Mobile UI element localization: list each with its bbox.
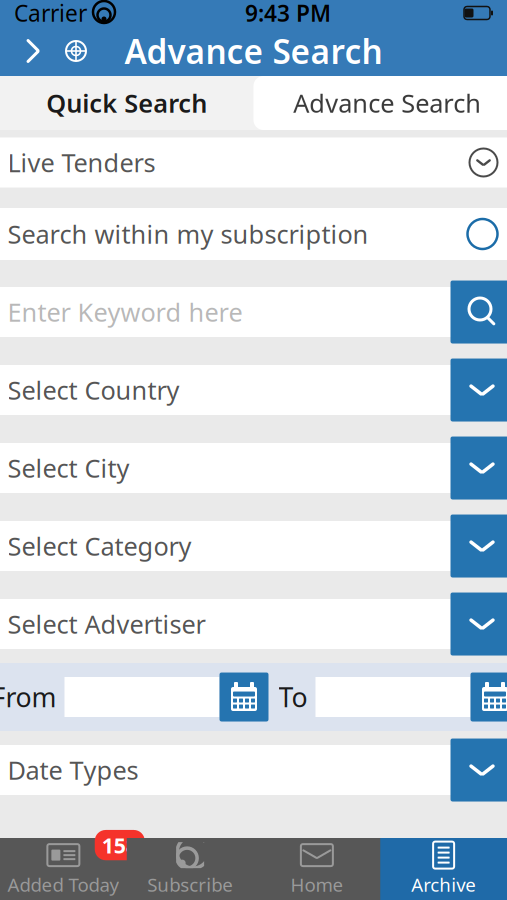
staticText: Date Types [7,753,138,787]
staticText: Select Country [7,373,179,407]
button[interactable]: 158 [0,838,127,900]
staticText: Select Advertiser [7,607,205,641]
staticText: Subscribe [147,872,233,897]
button[interactable]: Quick Search [0,76,253,130]
button[interactable]: Select City [450,436,507,499]
button[interactable]: From date [64,672,268,721]
staticText: Select City [7,451,129,485]
staticText: Enter Keyword here [7,295,242,329]
button[interactable]: Search within my subscription [461,213,503,255]
staticText: Archive [411,872,476,897]
button[interactable]: Select Advertiser [450,592,507,655]
staticText: 158 [102,831,138,859]
button[interactable]: Language [58,32,94,70]
staticText: Advance Search [293,86,481,120]
staticText: Select Category [7,529,191,563]
button[interactable]: Home [253,838,380,900]
staticText: Home [290,872,343,897]
button[interactable]: Select Country [450,358,507,421]
button[interactable]: Select Category [450,514,507,577]
staticText: From [0,679,56,715]
staticText: 9:43 PM [245,0,331,28]
button[interactable]: Advance Search [253,76,507,130]
button[interactable]: Choose tender status [463,142,503,182]
staticText: Advance Search [124,29,382,73]
button[interactable]: To date [315,672,507,721]
staticText: Carrier [14,0,87,28]
button[interactable]: Back [16,32,50,70]
staticText: Quick Search [46,86,207,120]
staticText: To [278,679,307,715]
staticText: Search within my subscription [7,217,368,251]
staticText: Added Today [7,872,119,897]
staticText: Live Tenders [7,146,155,179]
button[interactable]: Search [450,280,507,343]
button[interactable]: Date Types [450,738,507,801]
button[interactable]: Archive [380,838,507,900]
button[interactable]: Subscribe [127,838,254,900]
